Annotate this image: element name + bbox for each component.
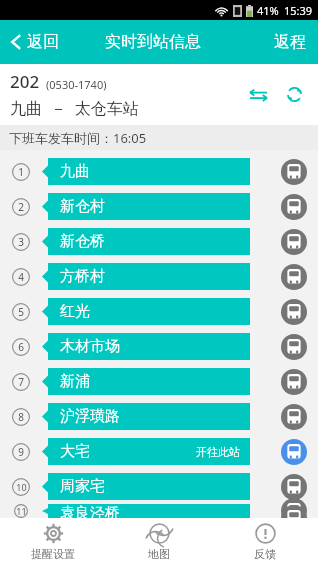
button[interactable]: 3 [0,224,318,259]
other: Bus at 新浦 [281,369,307,395]
button[interactable]: 7 [0,364,318,399]
staticText: 11 [16,505,27,517]
other: Bus at 方桥村 [281,264,307,290]
staticText: 周家宅 [60,477,105,496]
button[interactable]: 6 [0,329,318,364]
staticText: 下班车发车时间：16:05 [9,129,147,147]
staticText: 提醒设置 [31,547,75,561]
other: Bus at 大宅 [281,439,307,465]
staticText: 3 [18,235,24,249]
button[interactable]: 4 [0,259,318,294]
button[interactable]: 2 [0,189,318,224]
button[interactable]: 5 [0,294,318,329]
other: Bus at 沪浮璜路 [281,404,307,430]
staticText: 红光 [60,302,90,321]
staticText: 地图 [148,547,170,561]
staticText: 1 [18,165,24,179]
staticText: 新仓村 [60,197,105,216]
button[interactable]: 1 [0,154,318,189]
button[interactable]: 8 [0,399,318,434]
staticText: 实时到站信息 [105,32,201,52]
button[interactable]: 11 [0,504,318,518]
button[interactable]: 反馈 [212,518,318,566]
staticText: 202 [10,70,40,93]
staticText: 反馈 [254,547,276,561]
staticText: 2 [18,200,24,214]
staticText: 41% [257,3,279,18]
staticText: 大宅 [60,442,90,461]
button[interactable]: 返程 [262,24,318,60]
other: Bus at 红光 [281,299,307,325]
staticText: 木材市场 [60,337,120,356]
staticText: 方桥村 [60,267,105,286]
staticText: 袁良泾桥 [60,504,120,518]
staticText: 九曲 － 太仓车站 [10,97,139,119]
staticText: 5 [18,305,24,319]
staticText: 15:39 [284,3,313,18]
staticText: 10 [16,481,27,493]
other: Bus at 周家宅 [281,474,307,500]
staticText: 沪浮璜路 [60,407,120,426]
other: Bus at 九曲 [281,159,307,185]
staticText: (0530-1740) [46,77,107,92]
staticText: 7 [18,375,24,389]
staticText: 6 [18,340,24,354]
staticText: 新仓桥 [60,232,105,251]
other: Bus at 新仓桥 [281,229,307,255]
button[interactable]: 地图 [106,518,212,566]
button[interactable]: 提醒设置 [0,518,106,566]
button[interactable]: 9 [0,434,318,469]
staticText: 新浦 [60,372,90,391]
staticText: 9 [18,445,24,459]
staticText: 开往此站 [196,445,240,459]
button[interactable]: Switch direction [242,81,275,109]
other: Bus at 木材市场 [281,334,307,360]
button[interactable]: 返回 [0,26,69,58]
button[interactable]: Refresh [279,79,310,110]
staticText: 返程 [274,32,306,52]
other: Bus at 新仓村 [281,194,307,220]
button[interactable]: 10 [0,469,318,504]
staticText: 4 [18,270,24,284]
staticText: 九曲 [60,162,90,181]
staticText: 返回 [27,32,59,52]
staticText: 8 [18,410,24,424]
other: Bus at 袁良泾桥 [281,504,307,518]
